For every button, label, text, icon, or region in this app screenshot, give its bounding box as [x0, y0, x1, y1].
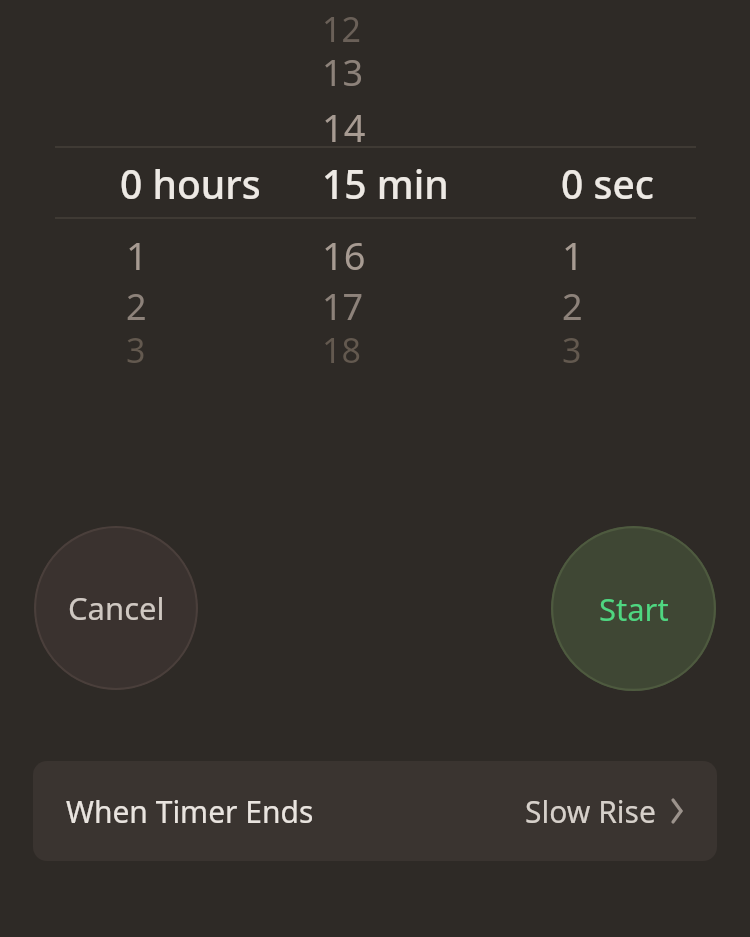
staticText: 3: [562, 327, 582, 373]
staticText: 17: [322, 282, 364, 331]
staticText: 14: [322, 101, 366, 153]
staticText: Cancel: [68, 587, 165, 629]
staticText: 12: [322, 6, 361, 52]
staticText: 3: [126, 327, 146, 373]
staticText: 16: [322, 229, 366, 281]
staticText: Start: [599, 588, 669, 630]
staticText: 1: [562, 229, 584, 281]
staticText: 15 min: [322, 157, 449, 210]
button[interactable]: 15 min: [293, 148, 508, 218]
staticText: 1: [126, 229, 148, 281]
button[interactable]: 0 hours: [55, 148, 293, 218]
button[interactable]: Start: [551, 526, 716, 691]
staticText: 0 hours: [120, 157, 261, 210]
staticText: 0 sec: [561, 157, 654, 210]
staticText: 13: [322, 48, 364, 97]
button[interactable]: Cancel: [34, 526, 198, 690]
button[interactable]: 0 sec: [508, 148, 696, 218]
other: Open When Timer Ends options: [666, 799, 690, 823]
button[interactable]: When Timer Ends: [33, 761, 717, 861]
staticText: Slow Rise: [525, 791, 656, 832]
staticText: 2: [562, 282, 583, 331]
staticText: 2: [126, 282, 147, 331]
staticText: 18: [322, 327, 361, 373]
staticText: When Timer Ends: [66, 791, 314, 832]
